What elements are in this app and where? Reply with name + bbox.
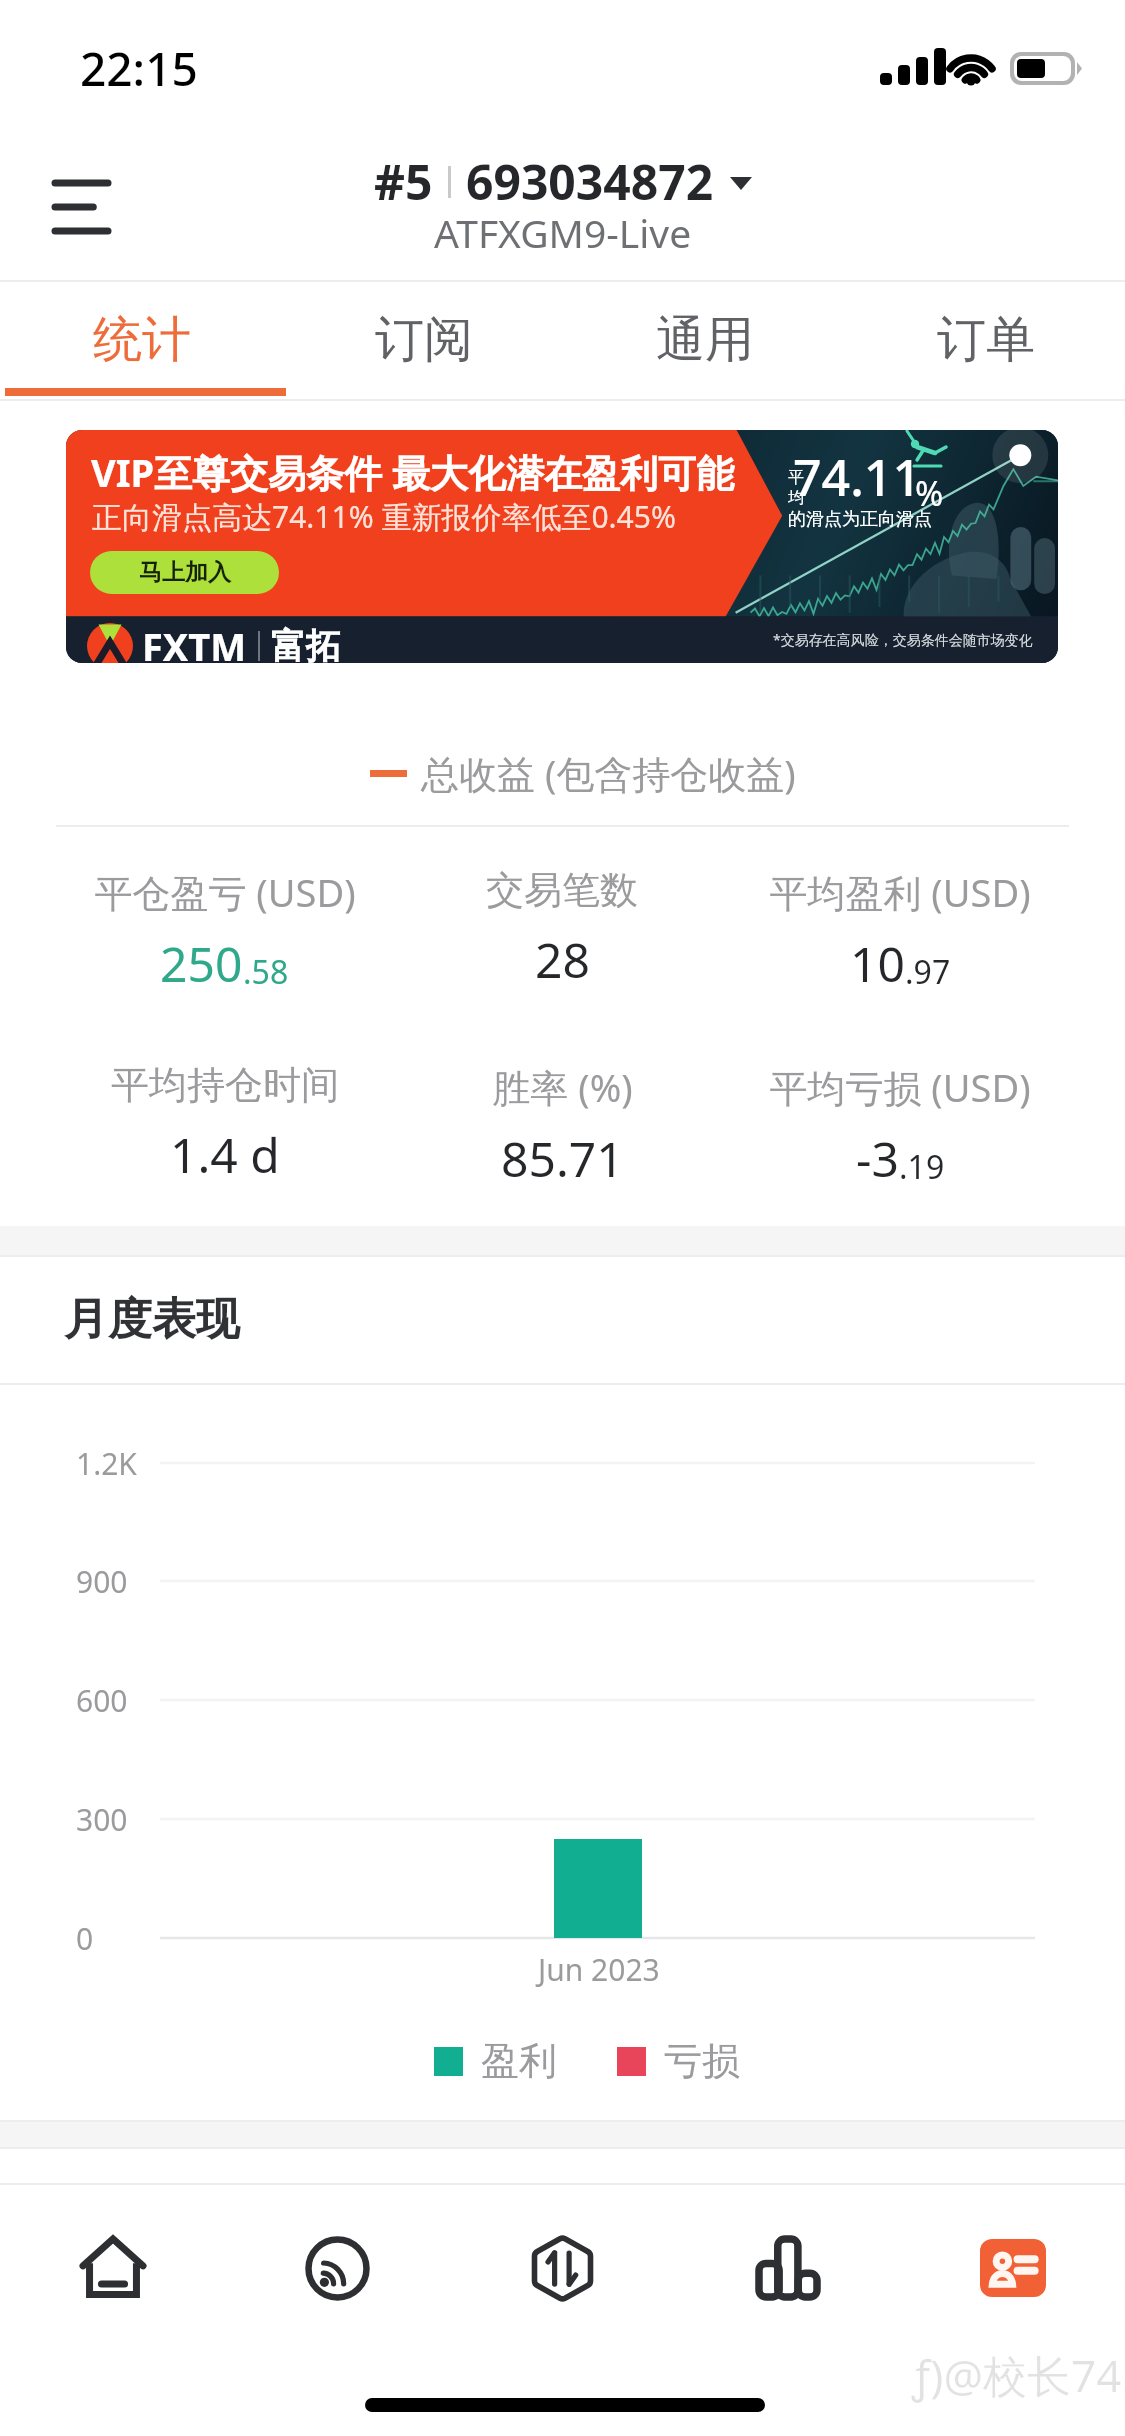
staticText: 693034872: [466, 149, 714, 214]
staticText: ATFXGM9-Live: [434, 206, 692, 259]
staticText: 富拓: [271, 624, 341, 663]
staticText: 900: [76, 1561, 128, 1602]
button[interactable]: 马上加入: [90, 551, 279, 594]
staticText: 1.2K: [76, 1443, 137, 1484]
staticText: .19: [899, 1145, 945, 1189]
staticText: 28: [535, 927, 590, 992]
button[interactable]: Home: [0, 2193, 225, 2343]
staticText: 通用: [656, 309, 754, 371]
staticText: 月度表现: [64, 1292, 240, 1347]
staticText: FXTM: [142, 620, 247, 663]
button[interactable]: Profile: [900, 2193, 1125, 2343]
staticText: 600: [76, 1680, 128, 1721]
button[interactable]: 统计: [1, 277, 283, 401]
button[interactable]: Statistics: [675, 2193, 900, 2343]
staticText: .58: [243, 950, 289, 994]
staticText: #5: [374, 149, 433, 214]
staticText: 平均持仓时间: [111, 1061, 339, 1109]
staticText: 亏损: [664, 2037, 740, 2085]
staticText: 平均亏损 (USD): [769, 1061, 1031, 1113]
staticText: 0: [76, 1918, 94, 1959]
staticText: 平仓盈亏 (USD): [94, 866, 356, 918]
button[interactable]: Menu: [16, 156, 146, 258]
staticText: 1.4 d: [170, 1122, 280, 1187]
staticText: %: [915, 470, 944, 516]
button[interactable]: 总收益 (包含持仓收益): [370, 747, 796, 799]
button[interactable]: VIP至尊交易条件 最大化潜在盈利可能: [66, 430, 1058, 663]
staticText: Jun 2023: [538, 1949, 660, 1990]
staticText: *交易存在高风险，交易条件会随市场变化: [773, 630, 1033, 649]
staticText: 订阅: [375, 309, 473, 371]
staticText: 统计: [93, 309, 191, 371]
staticText: 盈利: [481, 2037, 557, 2085]
staticText: 马上加入: [139, 558, 231, 587]
staticText: 85.71: [501, 1126, 624, 1191]
staticText: 总收益 (包含持仓收益): [421, 747, 796, 799]
staticText: -3: [856, 1126, 899, 1191]
button[interactable]: 订单: [845, 277, 1125, 401]
staticText: 平均盈利 (USD): [769, 866, 1031, 918]
staticText: 胜率 (%): [492, 1061, 633, 1113]
staticText: VIP至尊交易条件 最大化潜在盈利可能: [91, 446, 734, 498]
button[interactable]: Signals: [225, 2193, 450, 2343]
staticText: 平: [788, 468, 804, 488]
staticText: .97: [905, 950, 951, 994]
staticText: 250: [160, 931, 243, 996]
staticText: 300: [76, 1799, 128, 1840]
staticText: 74.11: [793, 443, 921, 511]
staticText: 22:15: [80, 37, 198, 100]
staticText: 10: [850, 931, 905, 996]
staticText: 的滑点为正向滑点: [788, 508, 932, 531]
button[interactable]: Trade: [450, 2193, 675, 2343]
button[interactable]: 订阅: [283, 277, 564, 401]
staticText: 均: [788, 488, 804, 508]
staticText: 交易笔数: [486, 866, 638, 914]
staticText: 正向滑点高达74.11% 重新报价率低至0.45%: [92, 496, 676, 537]
button[interactable]: #5: [0, 149, 1125, 267]
staticText: 订单: [937, 309, 1035, 371]
button[interactable]: 通用: [564, 277, 845, 401]
staticText: ƒ)@校长74: [912, 2345, 1122, 2405]
